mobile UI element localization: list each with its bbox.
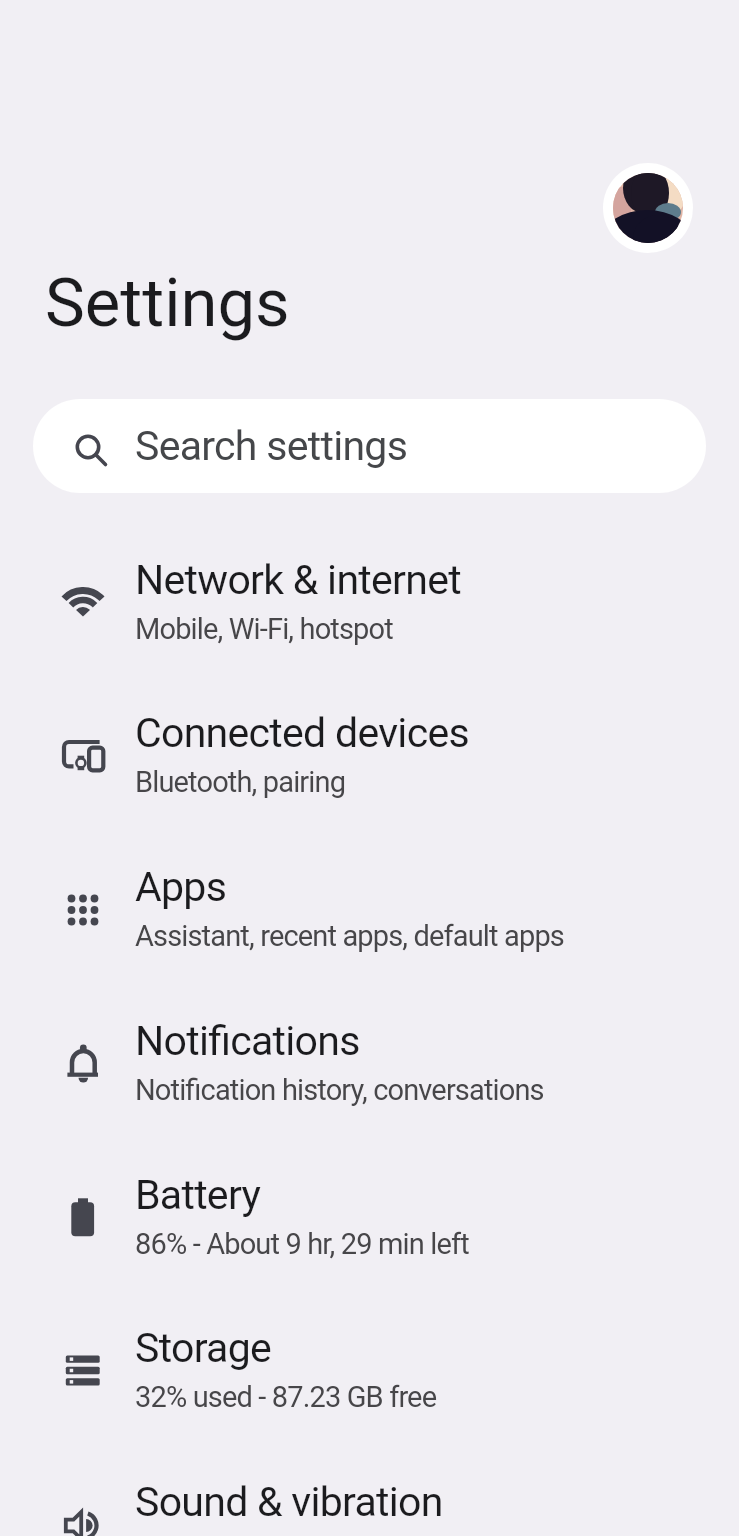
staticText: 86% - About 9 hr, 29 min left xyxy=(135,1227,469,1261)
staticText: Assistant, recent apps, default apps xyxy=(135,919,564,953)
staticText: Apps xyxy=(135,863,227,911)
button[interactable]: Search settings xyxy=(33,399,706,493)
staticText: Sound & vibration xyxy=(135,1478,443,1526)
staticText: Notifications xyxy=(135,1017,360,1065)
button[interactable]: Battery xyxy=(0,1141,739,1295)
staticText: Bluetooth, pairing xyxy=(135,765,346,799)
staticText: Settings xyxy=(45,264,290,343)
button[interactable]: Notifications xyxy=(0,987,739,1141)
staticText: Mobile, Wi-Fi, hotspot xyxy=(135,612,393,646)
button[interactable]: Apps xyxy=(0,833,739,987)
button[interactable]: Network & internet xyxy=(0,526,739,680)
staticText: Battery xyxy=(135,1171,261,1219)
staticText: Connected devices xyxy=(135,709,469,757)
staticText: Notification history, conversations xyxy=(135,1073,544,1107)
staticText: Network & internet xyxy=(135,556,461,604)
button[interactable]: Connected devices xyxy=(0,679,739,833)
staticText: Search settings xyxy=(135,422,408,470)
button[interactable] xyxy=(603,163,693,253)
button[interactable]: Sound & vibration xyxy=(0,1448,739,1536)
button[interactable]: Storage xyxy=(0,1294,739,1448)
staticText: 32% used - 87.23 GB free xyxy=(135,1380,437,1414)
staticText: Storage xyxy=(135,1324,271,1372)
